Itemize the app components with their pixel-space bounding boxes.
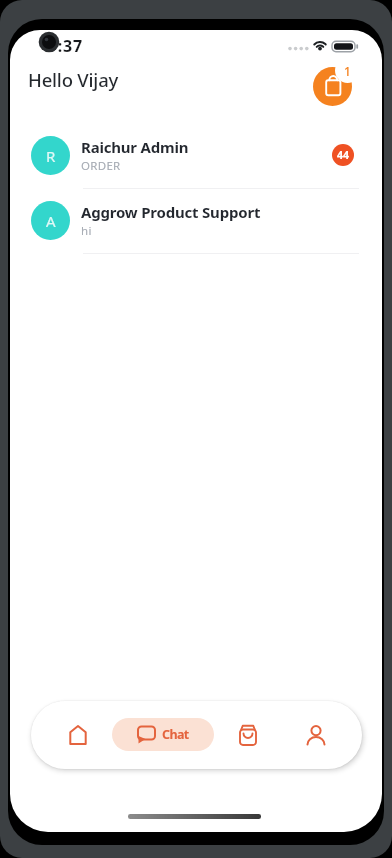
button[interactable] [295, 714, 336, 755]
staticText: Chat [162, 726, 189, 743]
staticText: hi [81, 223, 92, 239]
staticText: Hello Vijay [28, 67, 119, 92]
button[interactable] [227, 714, 268, 755]
button[interactable]: A [10, 189, 382, 253]
button[interactable]: R [10, 124, 382, 188]
button[interactable]: Chat [112, 718, 214, 751]
staticText: Raichur Admin [81, 137, 189, 157]
staticText: R [46, 146, 56, 166]
staticText: A [46, 211, 56, 231]
staticText: 1 [344, 63, 351, 79]
button[interactable] [313, 67, 352, 106]
button[interactable] [57, 714, 98, 755]
staticText: Aggrow Product Support [81, 202, 261, 222]
staticText: 9:37 [48, 35, 83, 57]
staticText: 44 [337, 148, 350, 162]
staticText: ORDER [81, 158, 121, 174]
